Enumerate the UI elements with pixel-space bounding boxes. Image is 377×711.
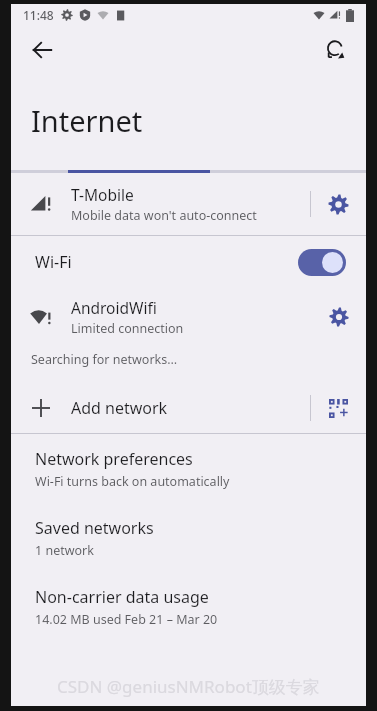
staticText: Network preferences	[35, 448, 193, 470]
button[interactable]: T-Mobile	[11, 173, 366, 235]
staticText: 1 network	[35, 542, 94, 559]
staticText: 11:48	[23, 7, 54, 23]
button[interactable]: Non-carrier data usage	[11, 572, 366, 641]
button[interactable]: Back	[20, 28, 64, 72]
staticText: Wi-Fi	[35, 251, 72, 273]
button[interactable]: Help and feedback	[313, 28, 357, 72]
staticText: 14.02 MB used Feb 21 – Mar 20	[35, 611, 218, 628]
staticText: Saved networks	[35, 517, 154, 539]
staticText: AndroidWifi	[71, 297, 157, 318]
button[interactable]: Network preferences	[11, 434, 366, 503]
staticText: Limited connection	[71, 320, 184, 337]
button[interactable]: Mobile network settings	[311, 173, 366, 235]
staticText: T-Mobile	[71, 184, 134, 205]
staticText: Add network	[71, 397, 310, 419]
button[interactable]: Add network	[11, 383, 366, 433]
staticText: Mobile data won't auto-connect	[71, 207, 257, 224]
staticText: Internet	[31, 101, 143, 140]
button[interactable]: Scan QR code	[311, 383, 366, 433]
staticText: Wi-Fi turns back on automatically	[35, 473, 230, 490]
button[interactable]: Saved networks	[11, 503, 366, 572]
button[interactable]: Wi-Fi	[11, 236, 366, 288]
staticText: CSDN @geniusNMRobot顶级专家	[57, 675, 320, 698]
staticText: Non-carrier data usage	[35, 586, 209, 608]
button[interactable]: Network details	[311, 288, 366, 346]
button[interactable]: AndroidWifi	[11, 288, 366, 346]
staticText: Searching for networks…	[31, 351, 178, 368]
